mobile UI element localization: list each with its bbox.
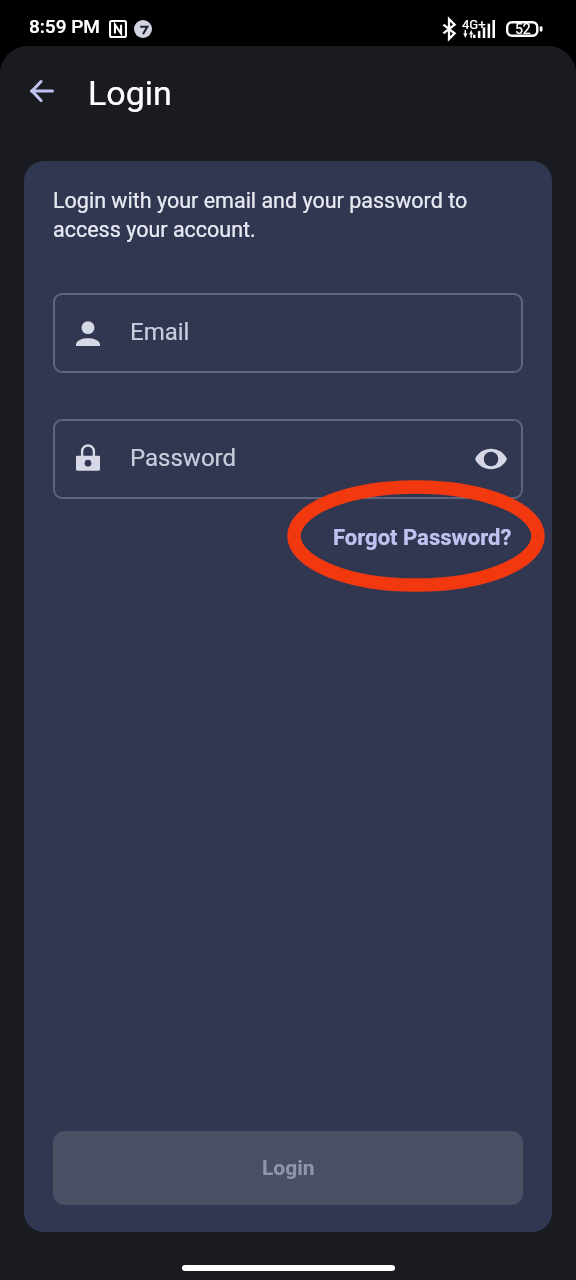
button[interactable]: Login bbox=[53, 1131, 523, 1205]
staticText: Login with your email and your password … bbox=[53, 188, 512, 242]
staticText: 4G+ bbox=[462, 17, 486, 32]
staticText: Login bbox=[262, 1156, 315, 1181]
staticText: Login bbox=[88, 73, 172, 113]
button[interactable]: Email bbox=[53, 293, 523, 373]
button[interactable]: Show password bbox=[470, 438, 512, 480]
staticText: Email bbox=[130, 318, 190, 346]
staticText: 8:59 PM bbox=[29, 15, 100, 37]
button[interactable]: Back bbox=[18, 67, 65, 114]
staticText: 52 bbox=[515, 21, 531, 37]
staticText: Forgot Password? bbox=[333, 525, 512, 551]
staticText: Password bbox=[130, 444, 237, 472]
button[interactable]: Forgot Password? bbox=[321, 519, 524, 557]
button[interactable]: Password bbox=[53, 419, 523, 499]
